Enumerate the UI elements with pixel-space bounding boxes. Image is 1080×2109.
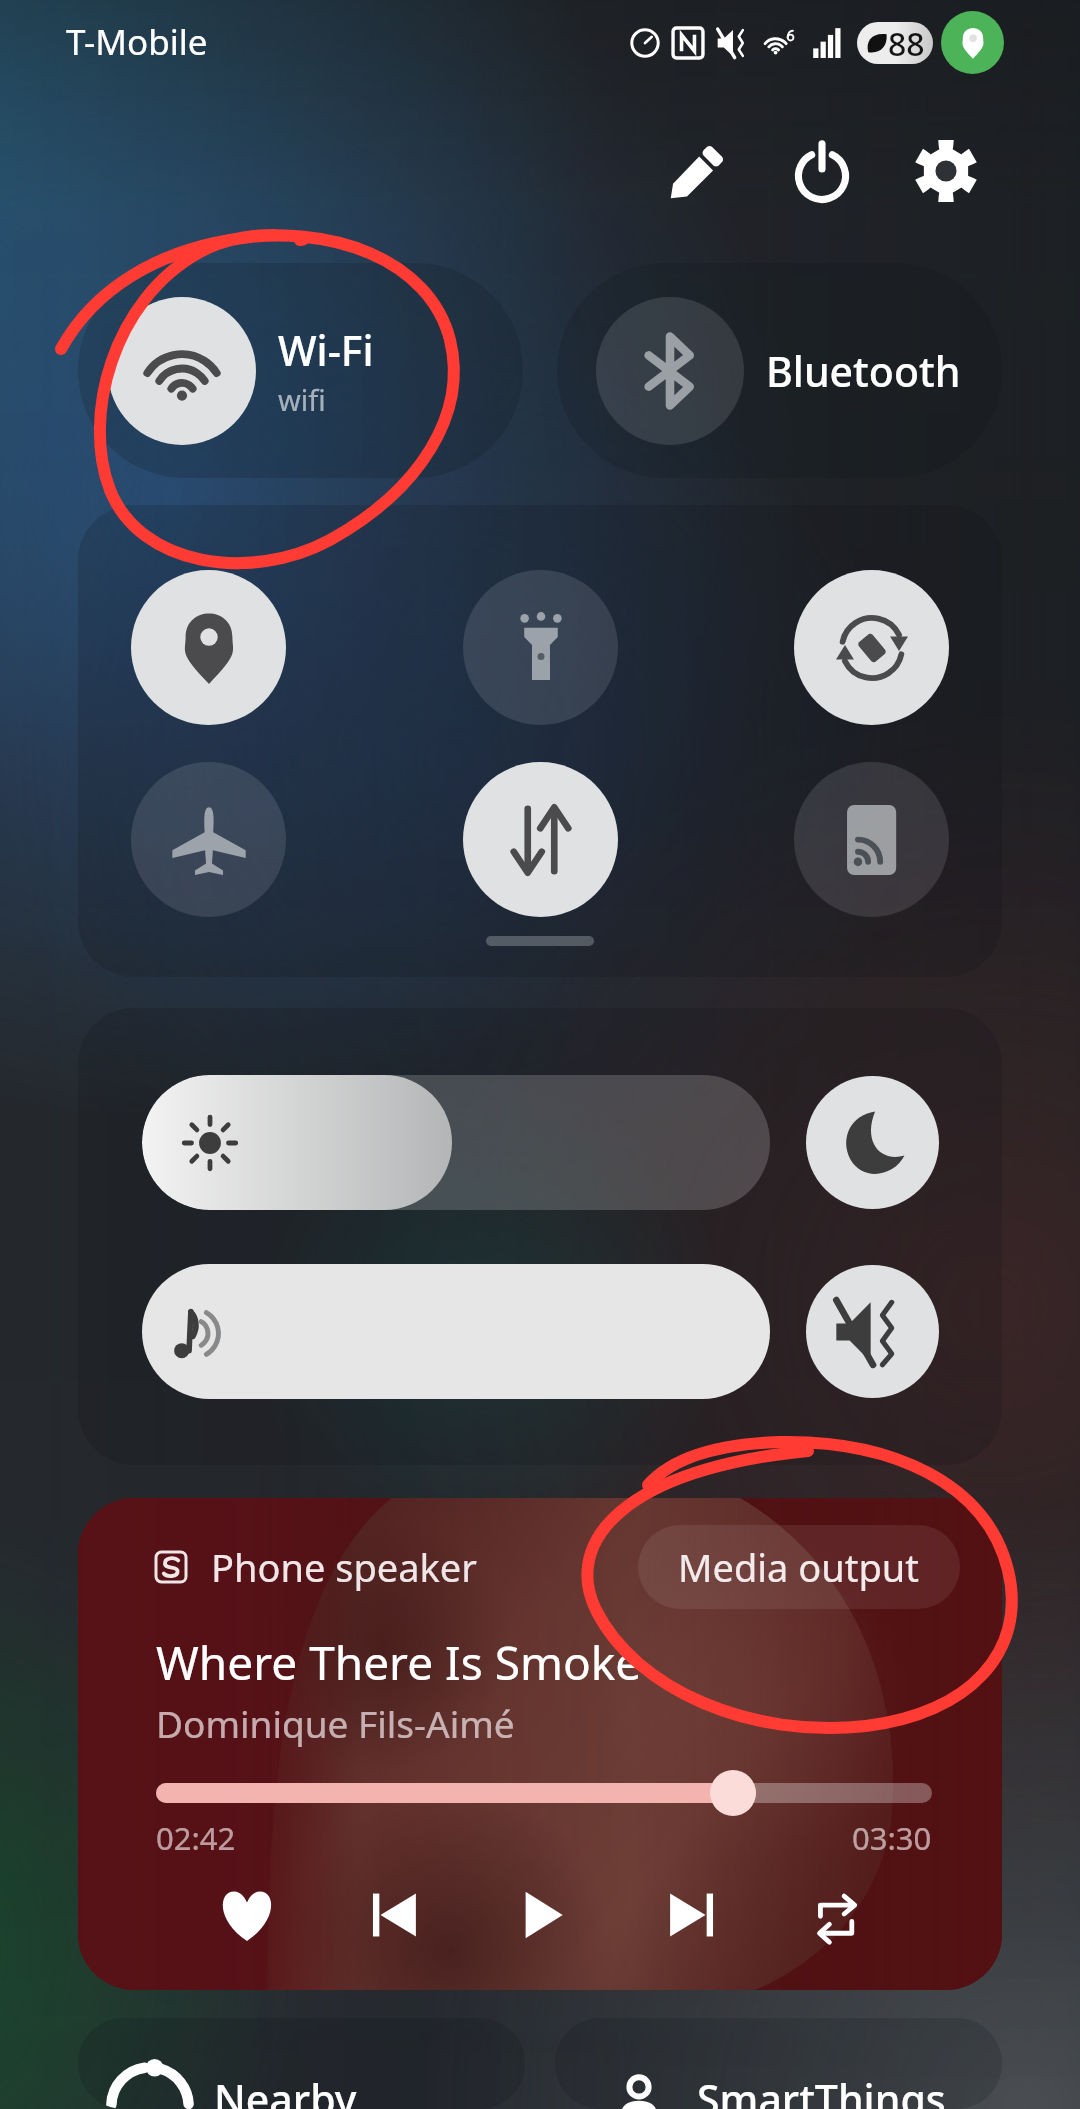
button[interactable]: Favourite [201,1869,293,1961]
button[interactable]: Brightness [142,1075,770,1210]
staticText: 02:42 [156,1817,236,1859]
button[interactable]: Play [497,1869,589,1961]
staticText: wifi [278,380,326,419]
button[interactable]: Location [131,570,286,725]
staticText: Nearby [214,2071,357,2109]
staticText: 88 [888,22,925,64]
button[interactable]: Volume [142,1264,770,1399]
button[interactable]: Smart View [794,762,949,917]
button[interactable]: Bluetooth [557,263,1002,478]
button[interactable]: Edit [636,109,760,233]
button[interactable]: SmartThings [555,2018,1002,2109]
button[interactable]: Previous [349,1869,441,1961]
button[interactable]: Nearby [78,2018,525,2109]
button[interactable]: Repeat [793,1869,885,1961]
button[interactable]: Mobile data [463,762,618,917]
button[interactable]: Media output [638,1525,960,1609]
button[interactable]: Settings [884,109,1008,233]
staticText: Dominique Fils-Aimé [156,1698,515,1748]
staticText: 03:30 [852,1817,932,1859]
staticText: Where There Is Smoke [156,1631,642,1694]
staticText: Phone speaker [211,1541,478,1593]
staticText: Bluetooth [766,343,961,399]
staticText: Wi-Fi [278,322,374,378]
staticText: T-Mobile [66,18,208,66]
button[interactable]: Airplane mode [131,762,286,917]
button[interactable]: Auto rotate [794,570,949,725]
button[interactable]: Flashlight [463,570,618,725]
button[interactable]: Mute [806,1265,939,1398]
button[interactable]: Do not disturb [806,1076,939,1209]
button[interactable]: Next [645,1869,737,1961]
button[interactable]: Power [760,109,884,233]
button[interactable]: Wi-Fi [78,263,523,478]
staticText: SmartThings [697,2071,946,2109]
staticText: Media output [678,1541,920,1593]
